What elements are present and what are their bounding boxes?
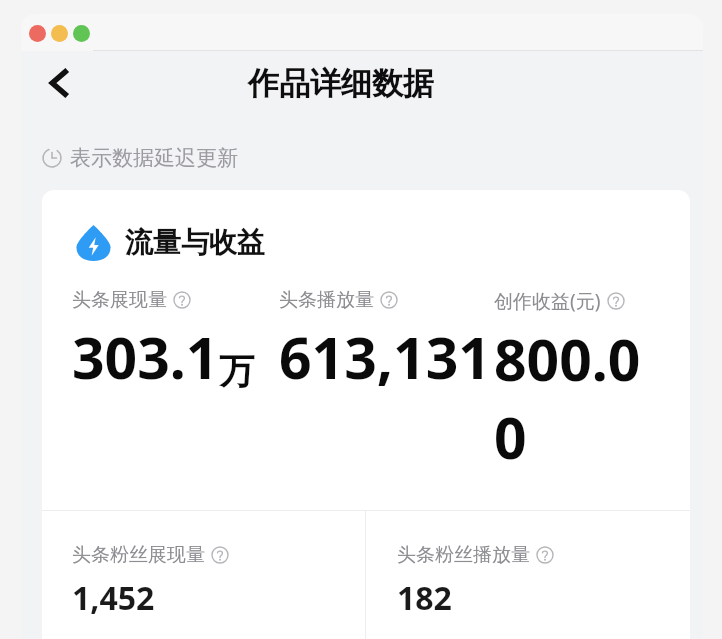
staticText: 800.00 [494, 320, 670, 476]
button[interactable]: Back [31, 55, 87, 111]
button[interactable]: 头条展现量 [72, 288, 279, 396]
staticText: 1,452 [72, 576, 155, 620]
staticText: 万 [219, 349, 254, 393]
staticText: 头条展现量 [72, 288, 167, 312]
staticText: 头条粉丝播放量 [397, 543, 530, 567]
staticText: 作品详细数据 [248, 64, 434, 103]
staticText: 创作收益(元) [494, 288, 601, 314]
staticText: 613,131 [279, 318, 491, 396]
button[interactable]: 创作收益(元) [494, 288, 670, 476]
staticText: 头条播放量 [279, 288, 374, 312]
staticText: 303.1 [72, 318, 219, 396]
staticText: 182 [397, 576, 452, 620]
staticText: 流量与收益 [125, 225, 265, 260]
button[interactable]: 头条播放量 [279, 288, 494, 396]
staticText: 表示数据延迟更新 [70, 145, 238, 171]
staticText: 头条粉丝展现量 [72, 543, 205, 567]
